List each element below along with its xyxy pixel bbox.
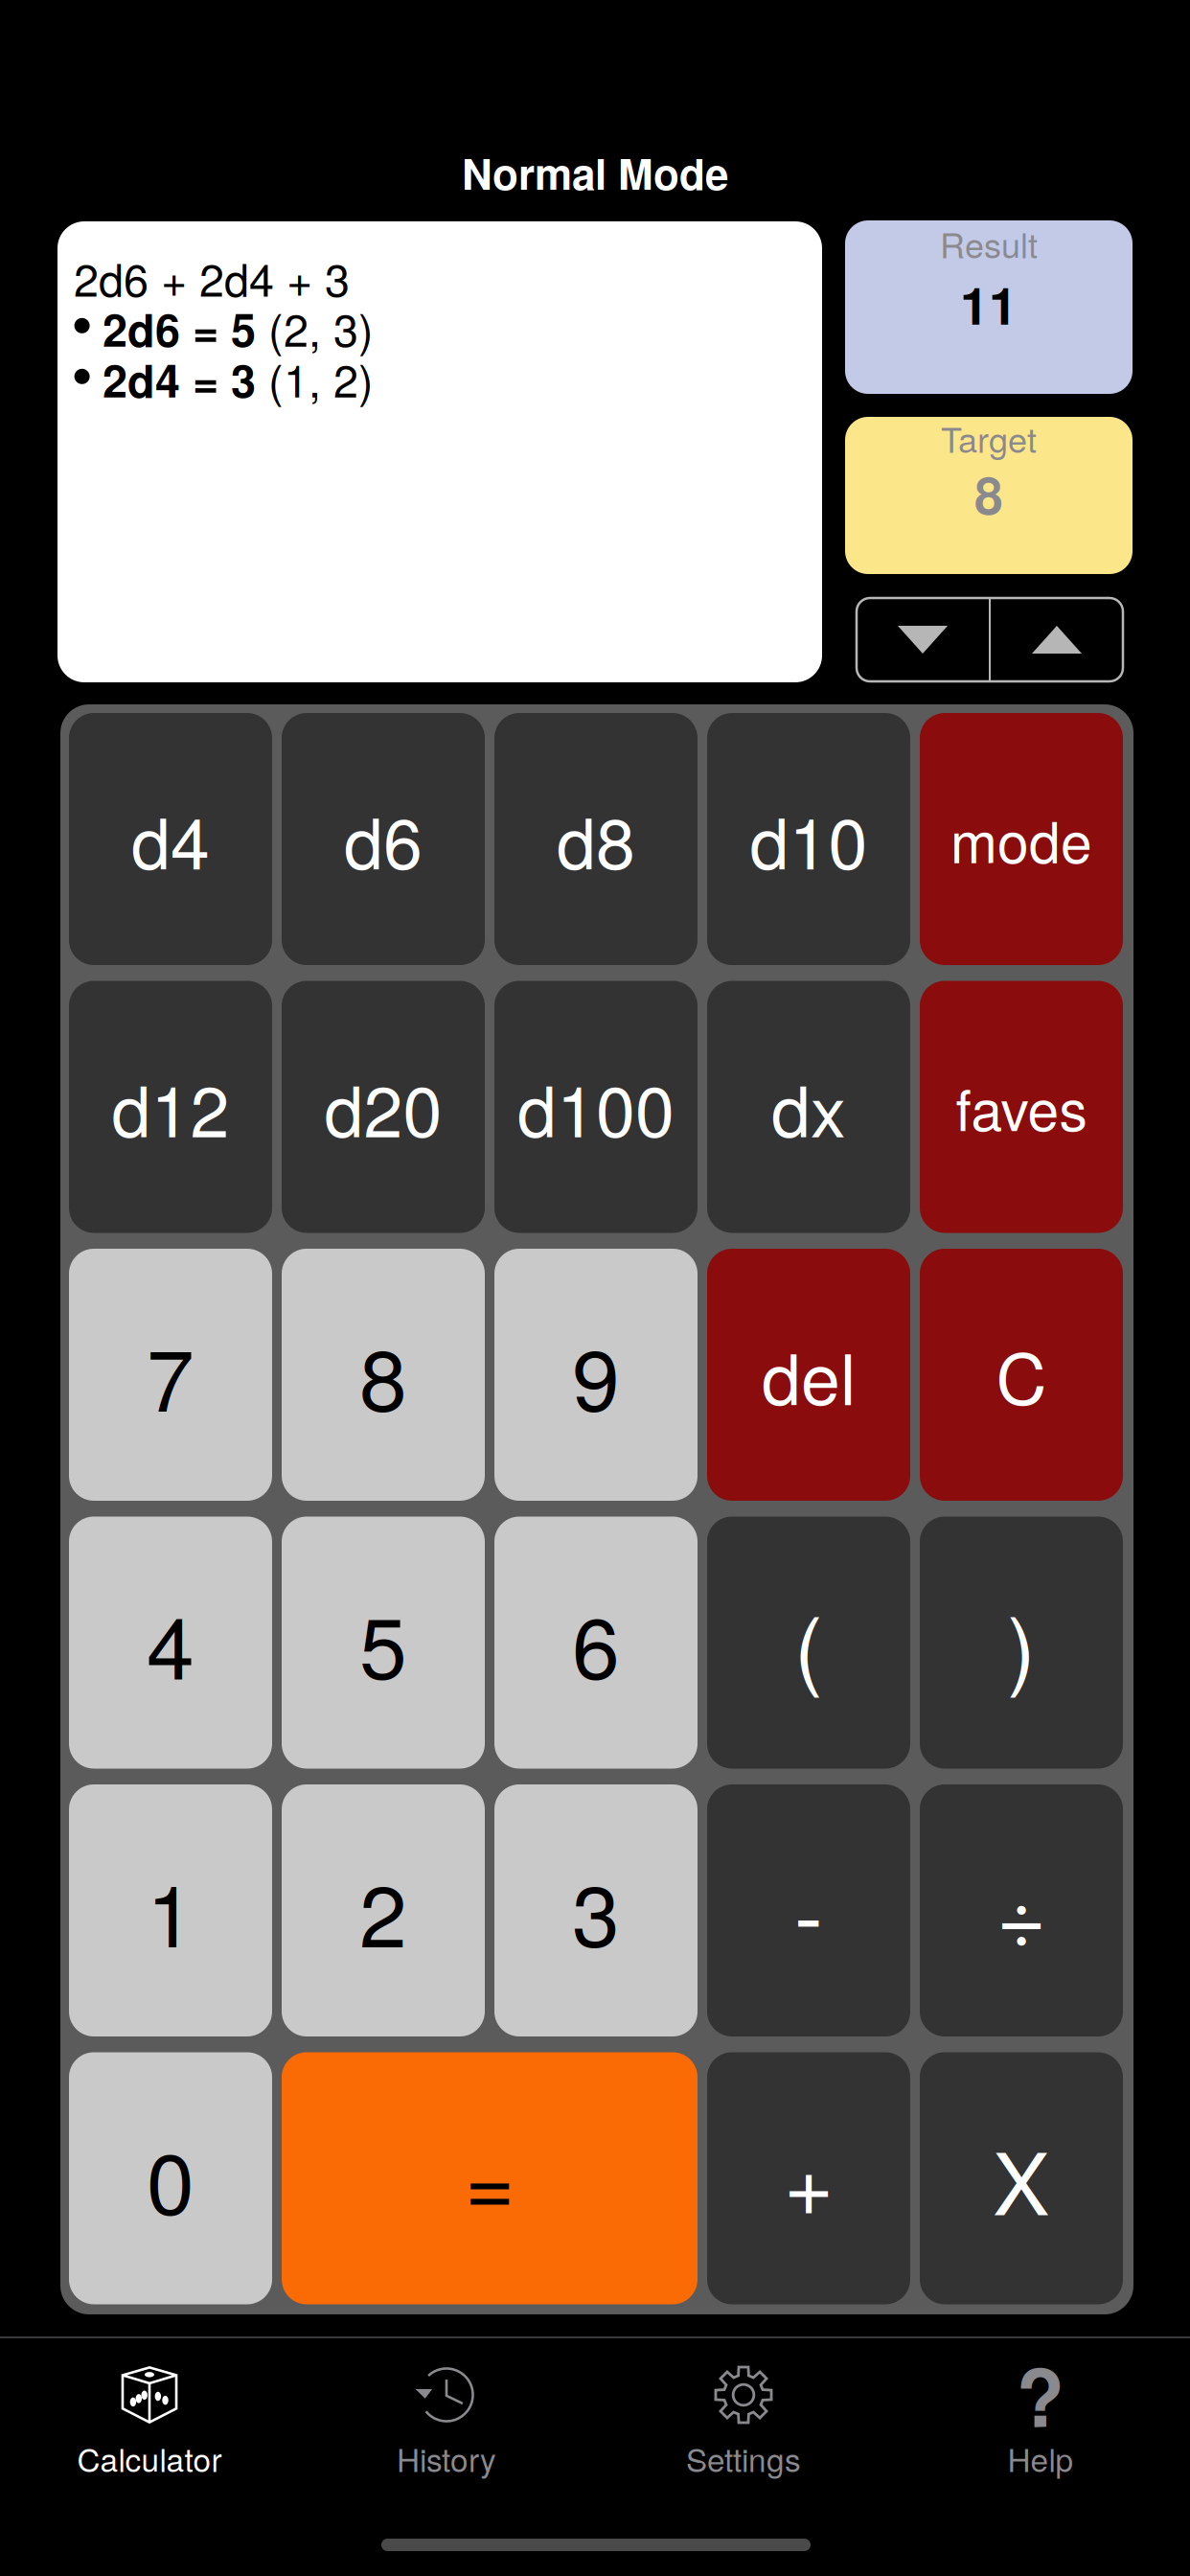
button[interactable]: ( (707, 1517, 910, 1769)
staticText: del (762, 1324, 856, 1425)
button[interactable]: d12 (69, 981, 272, 1233)
staticText: d6 (344, 789, 423, 889)
staticText: d20 (324, 1057, 442, 1157)
staticText: + (784, 2117, 834, 2240)
staticText: d8 (557, 789, 635, 889)
staticText: = (465, 2117, 515, 2240)
staticText: 7 (147, 1313, 195, 1436)
staticText: Normal Mode (462, 142, 728, 203)
staticText: d12 (112, 1057, 229, 1157)
button[interactable]: d20 (282, 981, 485, 1233)
staticText: 8 (359, 1313, 407, 1436)
staticText: d100 (517, 1057, 675, 1157)
button[interactable]: 1 (69, 1784, 272, 2036)
staticText: 2 (359, 1849, 407, 1972)
button[interactable]: d6 (282, 713, 485, 965)
button[interactable]: del (707, 1249, 910, 1501)
button[interactable]: 7 (69, 1249, 272, 1501)
staticText: 4 (147, 1581, 195, 1704)
button[interactable]: 3 (494, 1784, 698, 2036)
staticText: 1 (147, 1849, 195, 1972)
button[interactable]: Increase target (991, 598, 1123, 681)
staticText: dx (771, 1057, 846, 1157)
staticText: 9 (572, 1313, 620, 1436)
staticText: Result (940, 219, 1038, 268)
staticText: Help (1007, 2435, 1074, 2481)
staticText: Settings (686, 2435, 801, 2481)
staticText: 0 (147, 2117, 195, 2240)
staticText: 2d6 = 5 (2, 3) (103, 296, 374, 360)
staticText: C (996, 1324, 1047, 1425)
button[interactable]: Decrease target (857, 598, 989, 681)
button[interactable]: 0 (69, 2052, 272, 2304)
staticText: ÷ (996, 1849, 1046, 1972)
staticText: 6 (572, 1581, 620, 1704)
button[interactable]: X (920, 2052, 1123, 2304)
staticText: X (993, 2117, 1050, 2240)
button[interactable]: Calculator (1, 2338, 298, 2530)
button[interactable]: 8 (282, 1249, 485, 1501)
button[interactable]: d8 (494, 713, 698, 965)
button[interactable]: mode (920, 713, 1123, 965)
staticText: 2d4 = 3 (1, 2) (103, 347, 374, 410)
button[interactable]: d100 (494, 981, 698, 1233)
button[interactable]: C (920, 1249, 1123, 1501)
staticText: - (794, 1849, 823, 1972)
staticText: d4 (131, 789, 210, 889)
staticText: mode (950, 799, 1092, 879)
staticText: d10 (750, 789, 868, 889)
staticText: Target (941, 413, 1037, 463)
staticText: Calculator (77, 2435, 222, 2481)
button[interactable]: - (707, 1784, 910, 2036)
button[interactable]: = (282, 2052, 698, 2304)
staticText: ? (1016, 2338, 1065, 2452)
staticText: 11 (960, 267, 1018, 340)
staticText: 3 (572, 1849, 620, 1972)
button[interactable]: 6 (494, 1517, 698, 1769)
button[interactable]: ) (920, 1517, 1123, 1769)
button[interactable]: History (298, 2338, 595, 2530)
staticText: 2d6 + 2d4 + 3 (74, 245, 350, 309)
staticText: 8 (974, 457, 1003, 530)
button[interactable]: ? (892, 2338, 1189, 2530)
button[interactable]: ÷ (920, 1784, 1123, 2036)
button[interactable]: 9 (494, 1249, 698, 1501)
button[interactable]: d10 (707, 713, 910, 965)
button[interactable]: 2 (282, 1784, 485, 2036)
button[interactable]: d4 (69, 713, 272, 965)
button[interactable]: 4 (69, 1517, 272, 1769)
staticText: History (397, 2435, 496, 2481)
staticText: faves (956, 1067, 1087, 1147)
button[interactable]: Settings (595, 2338, 892, 2530)
button[interactable]: dx (707, 981, 910, 1233)
staticText: ) (1007, 1581, 1036, 1704)
staticText: ( (794, 1581, 823, 1704)
button[interactable]: faves (920, 981, 1123, 1233)
staticText: 5 (359, 1581, 407, 1704)
button[interactable]: + (707, 2052, 910, 2304)
button[interactable]: 5 (282, 1517, 485, 1769)
